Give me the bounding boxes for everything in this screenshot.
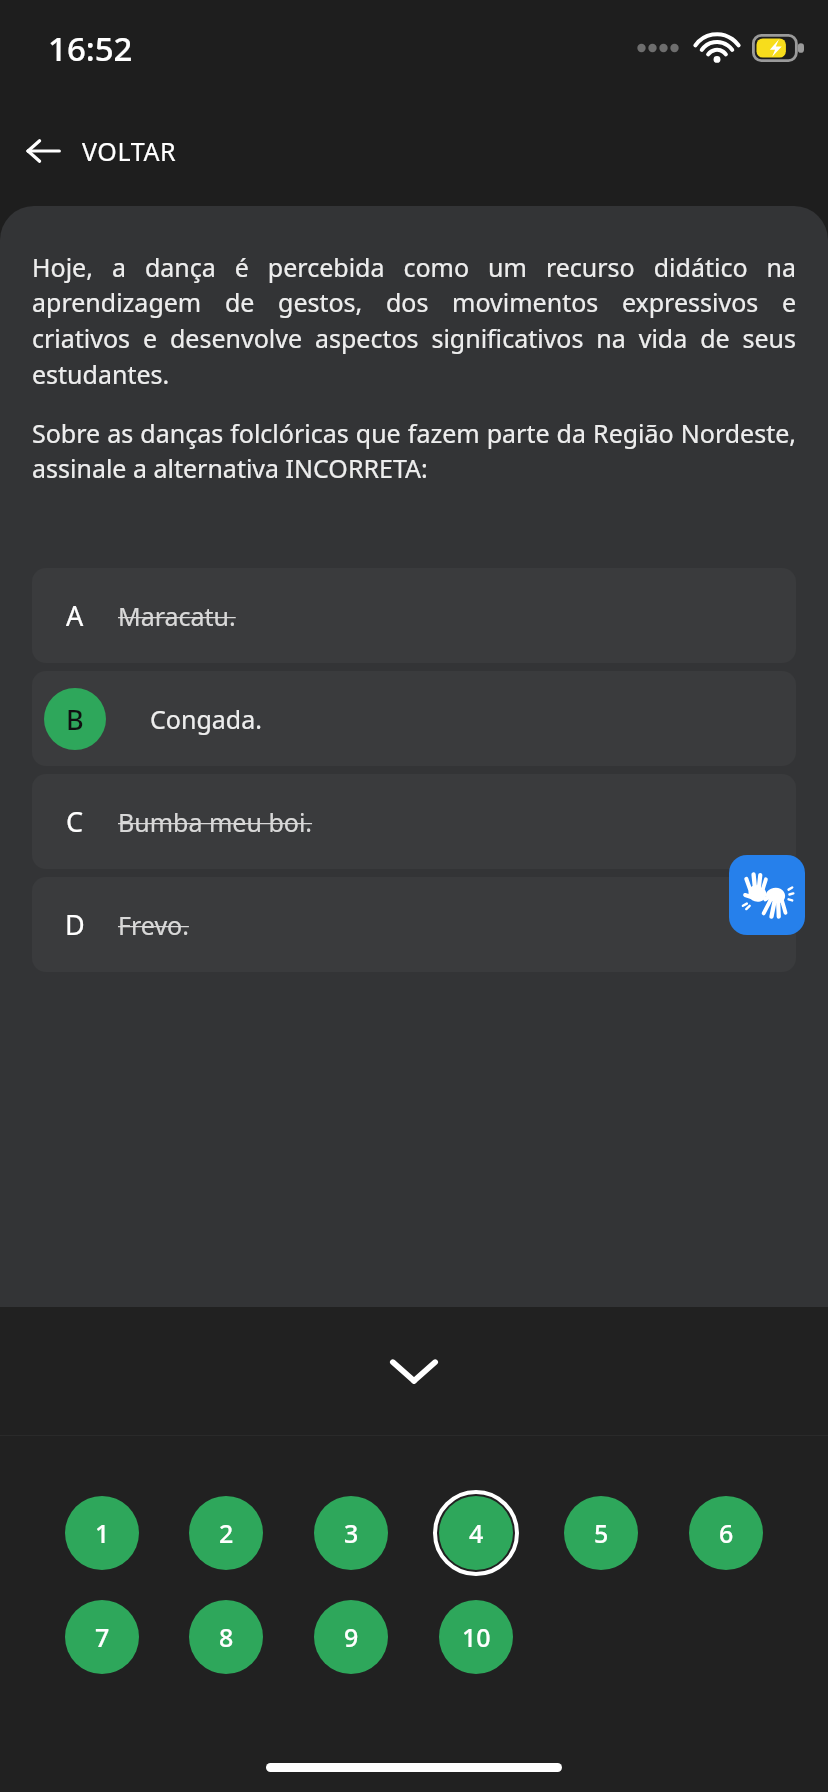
staticText: Frevo. [118,908,189,942]
staticText: D [65,906,85,943]
staticText: 8 [219,1620,234,1654]
staticText: Maracatu. [118,599,236,633]
staticText: 6 [719,1516,734,1550]
staticText: VOLTAR [82,134,177,168]
button[interactable]: VLibras tradutor de Libras [729,855,805,935]
button[interactable]: 7 [59,1594,145,1680]
staticText: 3 [344,1516,359,1550]
staticText: Hoje, a dança é percebida como um recurs… [32,250,796,392]
staticText: B [66,701,84,738]
button[interactable]: A [32,568,796,663]
staticText: Sobre as danças folclóricas que fazem pa… [32,416,796,486]
button[interactable]: 9 [308,1594,394,1680]
button[interactable]: 8 [183,1594,269,1680]
button[interactable]: 2 [183,1490,269,1576]
button[interactable]: 1 [59,1490,145,1576]
staticText: 2 [219,1516,234,1550]
button[interactable]: Recolher lista de questões [0,1307,828,1435]
staticText: Bumba meu boi. [118,805,313,839]
staticText: 1 [95,1516,110,1550]
button[interactable]: VOLTAR [0,96,828,206]
button[interactable]: C [32,774,796,869]
staticText: 7 [95,1620,110,1654]
staticText: C [66,803,84,840]
staticText: 16:52 [48,26,133,71]
button[interactable]: D [32,877,796,972]
staticText: Congada. [150,702,262,736]
staticText: A [66,597,84,634]
staticText: 9 [344,1620,359,1654]
button[interactable]: 3 [308,1490,394,1576]
staticText: 4 [469,1516,484,1550]
button[interactable]: 6 [683,1490,769,1576]
staticText: 5 [594,1516,609,1550]
button[interactable]: 10 [433,1594,519,1680]
button[interactable]: 5 [558,1490,644,1576]
staticText: 10 [462,1620,491,1654]
button[interactable]: B [32,671,796,766]
button[interactable]: 4 [433,1490,519,1576]
